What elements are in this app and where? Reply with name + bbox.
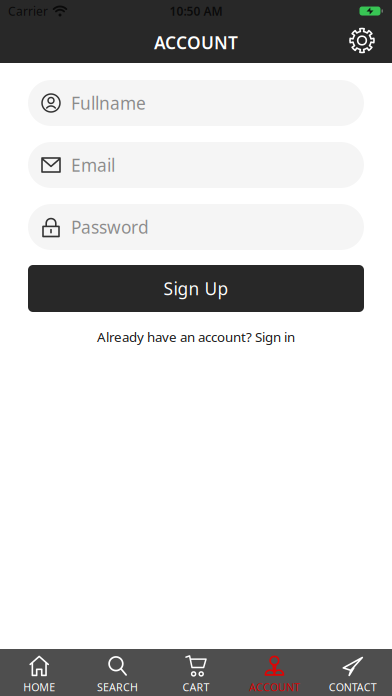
button[interactable]: Fullname bbox=[28, 80, 364, 126]
button[interactable]: CART bbox=[157, 649, 235, 696]
button[interactable]: Settings bbox=[349, 27, 392, 57]
staticText: HOME bbox=[23, 680, 55, 694]
staticText: ACCOUNT bbox=[249, 680, 300, 694]
staticText: SEARCH bbox=[97, 680, 138, 694]
button[interactable]: ACCOUNT bbox=[235, 649, 314, 696]
staticText: Sign Up bbox=[163, 277, 228, 300]
staticText: Email bbox=[71, 153, 115, 176]
button[interactable]: SEARCH bbox=[78, 649, 157, 696]
button[interactable]: Password bbox=[28, 204, 364, 250]
staticText: Already have an account? Sign in bbox=[97, 328, 295, 346]
staticText: CONTACT bbox=[329, 680, 377, 694]
staticText: Password bbox=[71, 215, 149, 238]
button[interactable]: Email bbox=[28, 142, 364, 188]
button[interactable]: CONTACT bbox=[314, 649, 392, 696]
staticText: Fullname bbox=[71, 91, 146, 114]
button[interactable]: Already have an account? Sign in bbox=[97, 328, 295, 346]
staticText: CART bbox=[182, 680, 209, 694]
button[interactable]: HOME bbox=[0, 649, 78, 696]
staticText: ACCOUNT bbox=[154, 31, 238, 54]
staticText: Carrier bbox=[8, 3, 48, 19]
staticText: 10:50 AM bbox=[169, 3, 222, 19]
button[interactable]: Sign Up bbox=[28, 265, 364, 312]
